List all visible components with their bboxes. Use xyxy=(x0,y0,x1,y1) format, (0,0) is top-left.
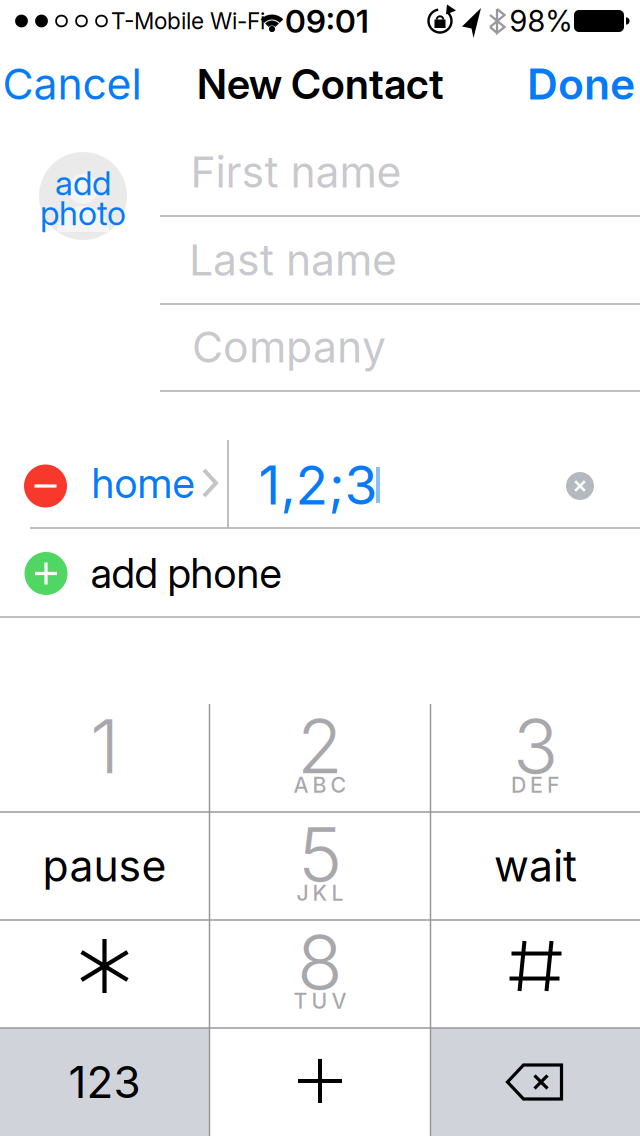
staticText: 98% xyxy=(509,4,572,38)
staticText: Last name xyxy=(189,235,397,285)
button[interactable]: 8 xyxy=(209,920,430,1028)
button[interactable]: 123 xyxy=(0,1028,209,1136)
staticText: 5 xyxy=(298,810,342,898)
button[interactable]: phone number xyxy=(246,441,546,529)
staticText: home xyxy=(91,459,194,507)
staticText: ABC xyxy=(293,772,346,798)
staticText: 123 xyxy=(68,1056,140,1108)
staticText: add phone xyxy=(90,549,281,597)
button[interactable]: Cancel xyxy=(2,59,141,109)
staticText: 8 xyxy=(297,918,343,1006)
button[interactable]: home xyxy=(83,440,228,528)
staticText: Done xyxy=(527,59,635,109)
button[interactable]: pound xyxy=(431,920,640,1028)
staticText: 1,2;3 xyxy=(258,453,377,516)
button[interactable]: add phone xyxy=(0,528,640,617)
button[interactable]: 5 xyxy=(209,812,430,920)
staticText: TUV xyxy=(293,988,346,1014)
staticText: 2 xyxy=(297,702,343,790)
button[interactable]: First name xyxy=(160,128,640,216)
staticText: T-Mobile Wi-Fi xyxy=(111,8,265,34)
staticText: 3 xyxy=(513,702,558,790)
staticText: add xyxy=(55,163,111,203)
staticText: Cancel xyxy=(2,59,141,109)
button[interactable]: asterisk xyxy=(0,920,209,1028)
button[interactable]: Done xyxy=(527,59,635,109)
button[interactable]: pause xyxy=(0,812,209,920)
button[interactable]: 1 xyxy=(0,704,209,812)
staticText: DEF xyxy=(511,772,560,798)
button[interactable]: delete phone xyxy=(24,464,67,507)
staticText: Company xyxy=(192,322,386,372)
staticText: pause xyxy=(42,841,166,891)
staticText: JKL xyxy=(296,880,343,906)
staticText: New Contact xyxy=(197,60,443,108)
staticText: 09:01 xyxy=(285,2,369,40)
button[interactable]: 3 xyxy=(431,704,640,812)
button[interactable]: wait xyxy=(431,812,640,920)
staticText: First name xyxy=(190,147,401,197)
button[interactable]: Company xyxy=(160,303,640,391)
button[interactable]: delete xyxy=(431,1028,640,1136)
button[interactable]: plus xyxy=(209,1028,430,1136)
staticText: photo xyxy=(40,193,126,233)
button[interactable]: 2 xyxy=(209,704,430,812)
button[interactable]: add photo xyxy=(39,152,127,240)
staticText: wait xyxy=(494,841,577,891)
staticText: 1 xyxy=(90,702,119,790)
button[interactable]: Last name xyxy=(160,216,640,304)
button[interactable]: clear text xyxy=(566,472,594,500)
